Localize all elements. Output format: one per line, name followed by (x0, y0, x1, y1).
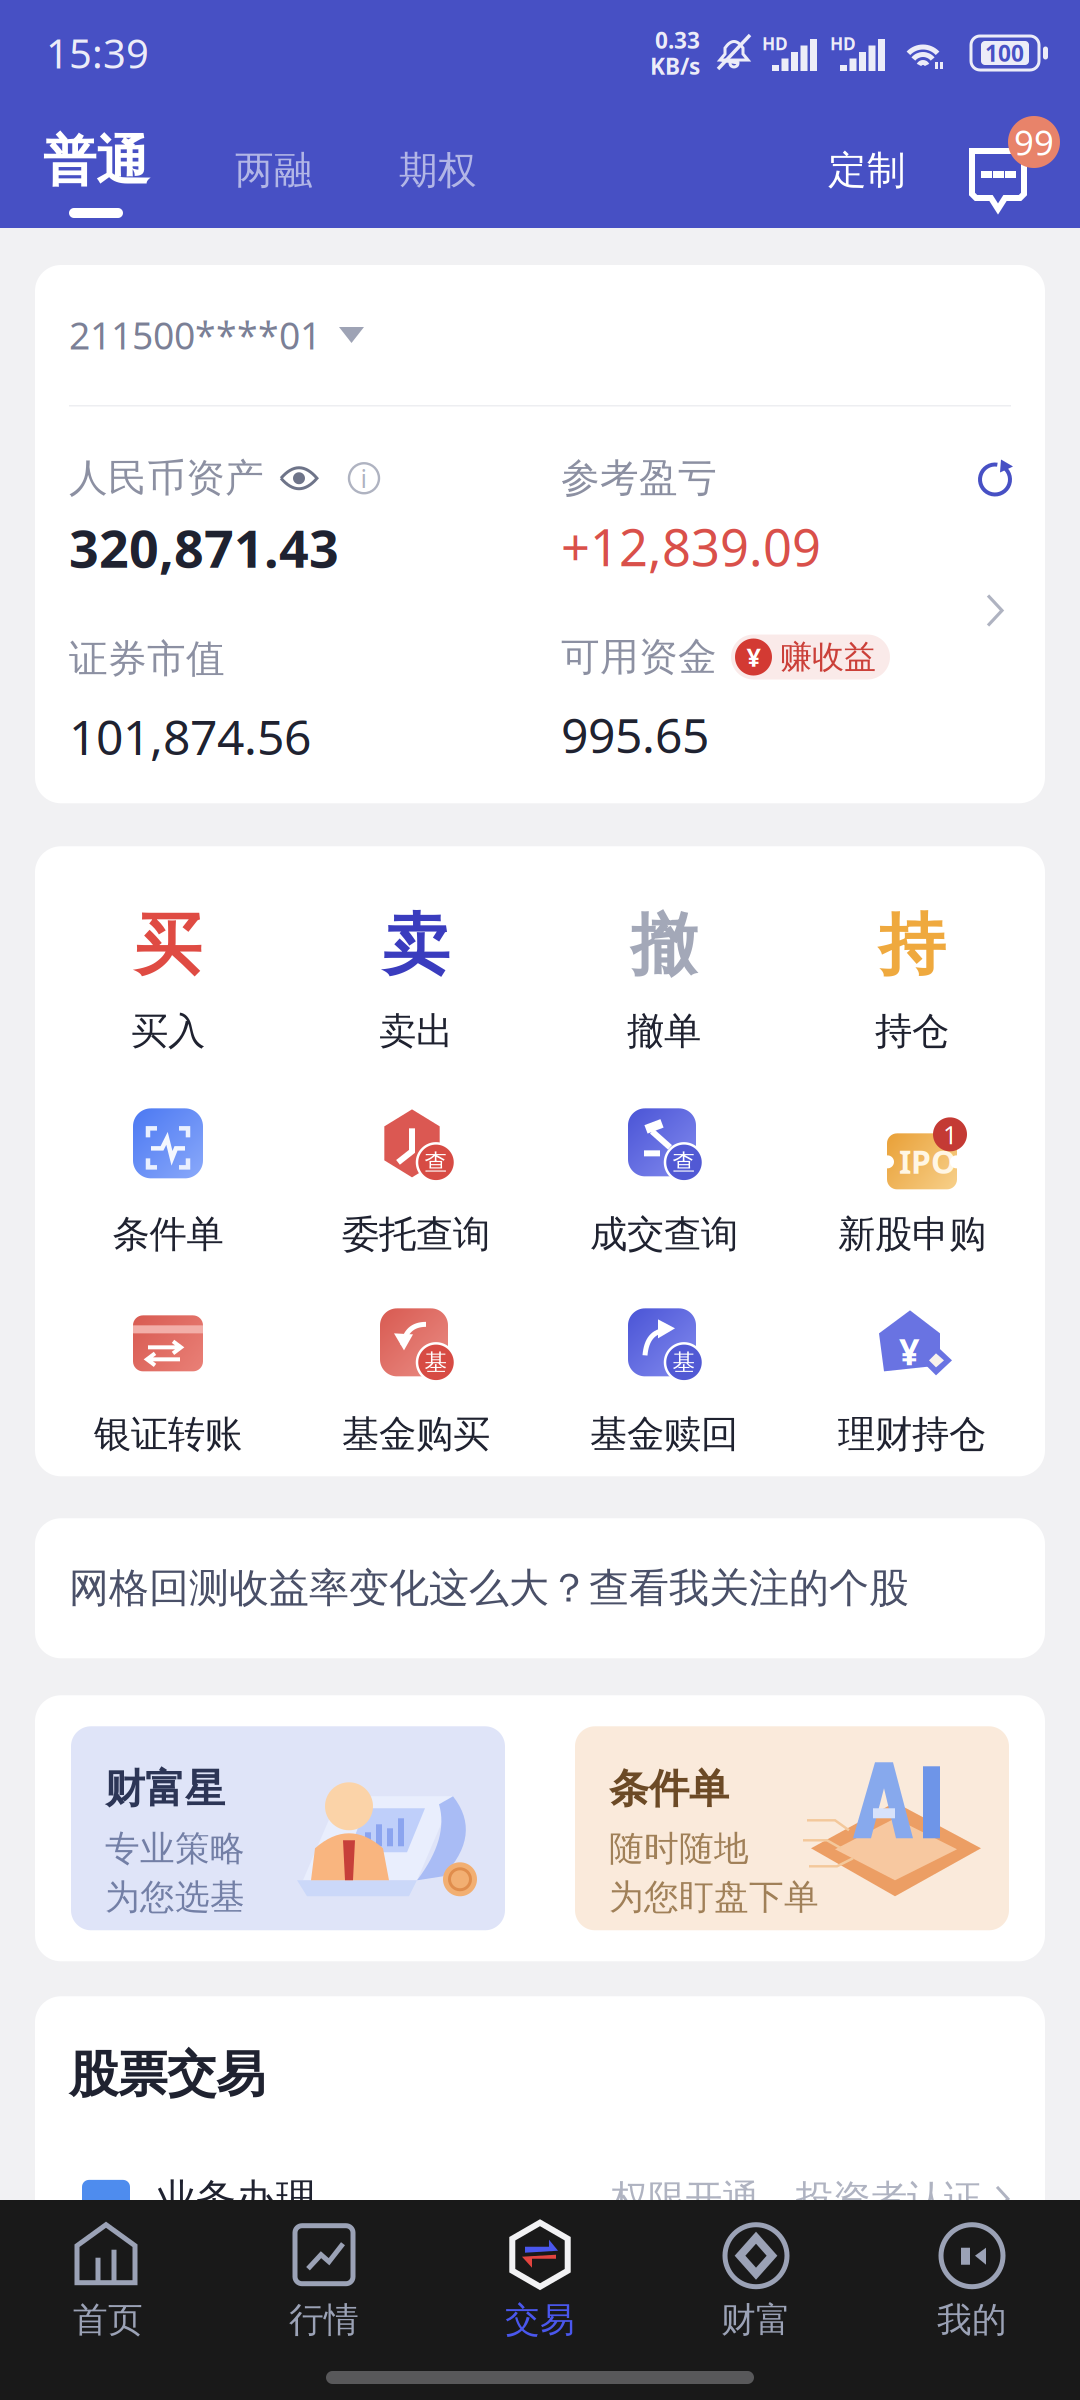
staticText: 101,874.56 (69, 704, 311, 768)
staticText: 条件单 (112, 1211, 223, 1257)
staticText: KB/s (650, 51, 700, 81)
staticText: 基金赎回 (590, 1411, 738, 1457)
staticText: 行情 (289, 2299, 359, 2341)
button[interactable]: 普通 (43, 128, 149, 220)
staticText: 人民币资产 (69, 454, 264, 502)
staticText: 为您选基 (105, 1876, 245, 1919)
staticText: 99 (1014, 119, 1054, 165)
staticText: 条件单 (609, 1764, 729, 1813)
button[interactable]: 查 (292, 1096, 540, 1258)
staticText: 基 (424, 1348, 447, 1376)
button[interactable]: 撤 (540, 896, 788, 1062)
button[interactable]: 基 (292, 1296, 540, 1458)
staticText: 财富 (721, 2299, 791, 2341)
staticText: 查 (672, 1148, 695, 1176)
button[interactable]: 我的 (864, 2206, 1080, 2356)
staticText: 理财持仓 (838, 1411, 986, 1457)
staticText: 持 (878, 904, 945, 986)
staticText: 交易 (505, 2299, 575, 2341)
staticText: 撤 (630, 904, 697, 986)
button[interactable]: 基 (540, 1296, 788, 1458)
button[interactable]: 持 (788, 896, 1036, 1062)
staticText: 定制 (828, 146, 906, 194)
staticText: 股票交易 (69, 2044, 265, 2105)
staticText: 网格回测收益率变化这么大？查看我关注的个股 (69, 1564, 909, 1613)
button[interactable]: 网格回测收益率变化这么大？查看我关注的个股 (35, 1518, 1045, 1658)
staticText: 可用资金 (561, 633, 717, 681)
staticText: 期权 (399, 146, 477, 194)
staticText: ¥ (746, 640, 760, 674)
staticText: 新股申购 (838, 1211, 986, 1257)
staticText: 随时随地 (609, 1827, 749, 1870)
staticText: 买 (134, 904, 201, 986)
staticText: 卖 (382, 904, 449, 986)
button[interactable]: 行情 (216, 2206, 432, 2356)
button[interactable]: 两融 (235, 146, 313, 220)
staticText: 卖出 (379, 1008, 453, 1054)
staticText: +12,839.09 (561, 513, 821, 580)
button[interactable]: 首页 (0, 2206, 216, 2356)
staticText: 证券市值 (69, 635, 225, 682)
button[interactable]: ¥ (788, 1296, 1036, 1458)
button[interactable]: 财富 (648, 2206, 864, 2356)
staticText: 为您盯盘下单 (609, 1876, 819, 1919)
staticText: 撤单 (627, 1008, 701, 1054)
staticText: 持仓 (875, 1008, 949, 1054)
staticText: 财富星 (105, 1764, 225, 1813)
staticText: 100 (985, 38, 1024, 68)
button[interactable]: 财富星 (71, 1726, 505, 1930)
button[interactable]: 期权 (399, 146, 477, 220)
button[interactable]: 查 (540, 1096, 788, 1258)
staticText: 我的 (937, 2299, 1007, 2341)
staticText: 基金购买 (342, 1411, 490, 1457)
staticText: 业务办理 (156, 2174, 316, 2223)
staticText: 委托查询 (342, 1211, 490, 1257)
staticText: 两融 (235, 146, 313, 194)
staticText: 320,871.43 (69, 513, 339, 582)
button[interactable]: 定制 (828, 146, 906, 220)
staticText: 买入 (131, 1008, 205, 1054)
staticText: i (360, 461, 367, 495)
staticText: 成交查询 (590, 1211, 738, 1257)
staticText: ¥ (899, 1327, 920, 1375)
staticText: HD (762, 32, 788, 55)
button[interactable]: 消息 (964, 116, 1068, 220)
staticText: 首页 (73, 2299, 143, 2341)
staticText: 查 (424, 1148, 447, 1176)
staticText: 专业策略 (105, 1827, 245, 1870)
staticText: 赚收益 (780, 637, 876, 677)
button[interactable]: 条件单 (575, 1726, 1009, 1930)
button[interactable]: IPO (788, 1096, 1036, 1258)
staticText: 1 (943, 1117, 957, 1151)
staticText: HD (830, 32, 856, 55)
staticText: 普通 (43, 128, 149, 194)
button[interactable]: 211500****01 (35, 265, 1045, 405)
staticText: 211500****01 (69, 310, 321, 360)
staticText: 权限开通、投资者认证 (611, 2176, 981, 2222)
button[interactable]: 买 (44, 896, 292, 1062)
staticText: 15:39 (46, 26, 149, 79)
button[interactable]: 业务办理 (35, 2149, 1045, 2249)
button[interactable]: 银证转账 (44, 1296, 292, 1458)
button[interactable]: 条件单 (44, 1096, 292, 1258)
button[interactable]: 卖 (292, 896, 540, 1062)
staticText: 基 (672, 1348, 695, 1376)
staticText: 995.65 (561, 703, 709, 766)
staticText: 银证转账 (94, 1411, 242, 1457)
staticText: 参考盈亏 (561, 454, 717, 502)
staticText: 0.33 (655, 25, 700, 55)
button[interactable]: 交易 (432, 2206, 648, 2356)
staticText: IPO (899, 1140, 956, 1183)
